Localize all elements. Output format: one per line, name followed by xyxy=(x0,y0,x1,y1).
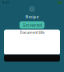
staticText: Recipe xyxy=(25,14,38,19)
staticText: Get started xyxy=(22,22,41,28)
staticText: Document title xyxy=(19,30,44,35)
staticText: 9:41 xyxy=(2,0,9,5)
